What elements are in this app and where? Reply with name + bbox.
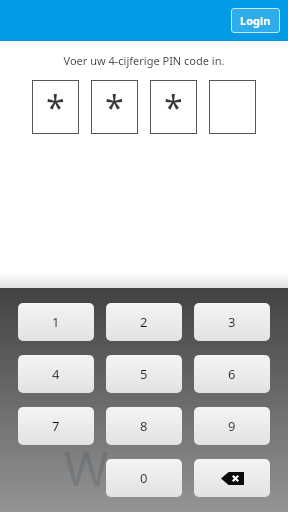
staticText: 8	[140, 417, 148, 435]
button[interactable]: Backspace	[194, 459, 270, 497]
button[interactable]	[209, 80, 256, 134]
button[interactable]: 7	[18, 407, 94, 445]
staticText: 9	[228, 417, 236, 435]
button[interactable]: 4	[18, 355, 94, 393]
button[interactable]: 0	[106, 459, 182, 497]
staticText: 2	[140, 313, 148, 331]
staticText: 6	[228, 365, 236, 383]
staticText: *	[164, 84, 183, 130]
staticText: W	[64, 435, 109, 500]
staticText: 4	[52, 365, 60, 383]
staticText: *	[105, 84, 124, 130]
staticText: 0	[140, 469, 148, 487]
staticText: 3	[228, 313, 236, 331]
staticText: 7	[52, 417, 60, 435]
button[interactable]: 8	[106, 407, 182, 445]
staticText: *	[46, 84, 65, 130]
button[interactable]: Login	[231, 8, 280, 33]
button[interactable]: 3	[194, 303, 270, 341]
staticText: Voer uw 4-cijferige PIN code in.	[0, 53, 288, 68]
button[interactable]: 9	[194, 407, 270, 445]
staticText: 1	[52, 313, 60, 331]
button[interactable]: *	[32, 80, 79, 134]
button[interactable]: 6	[194, 355, 270, 393]
staticText: 5	[140, 365, 148, 383]
button[interactable]: 1	[18, 303, 94, 341]
button[interactable]: *	[150, 80, 197, 134]
button[interactable]: 2	[106, 303, 182, 341]
button[interactable]: 5	[106, 355, 182, 393]
button[interactable]: *	[91, 80, 138, 134]
staticText: Login	[240, 13, 271, 28]
